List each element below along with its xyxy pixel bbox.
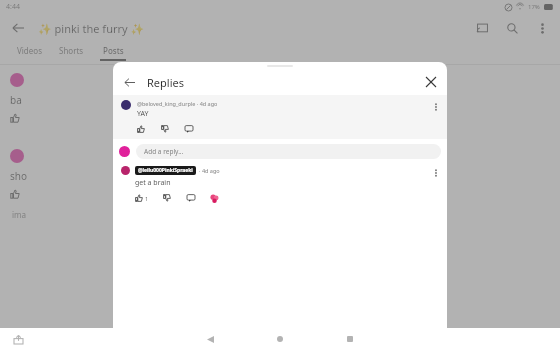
button[interactable]: Dislike xyxy=(163,194,171,202)
staticText: ba xyxy=(10,93,22,107)
button[interactable]: Add a reply... xyxy=(136,144,441,159)
button[interactable]: Cast xyxy=(472,18,492,38)
button[interactable]: Back xyxy=(202,331,218,347)
staticText: @beloved_king_durple · 4d ago xyxy=(137,100,218,107)
staticText: YAY xyxy=(137,109,149,119)
staticText: 4:44 xyxy=(6,2,20,12)
button[interactable]: Back xyxy=(119,72,139,92)
staticText: Replies xyxy=(147,75,184,90)
button[interactable]: More options xyxy=(532,18,552,38)
button[interactable]: Close xyxy=(421,72,441,92)
button[interactable]: Shorts xyxy=(50,42,92,64)
staticText: get a brain xyxy=(135,178,171,188)
staticText: ✨ pinki the furry ✨ xyxy=(38,21,145,36)
button[interactable]: Reply xyxy=(187,194,195,202)
staticText: ima xyxy=(12,209,27,220)
button[interactable]: Posts xyxy=(92,42,134,64)
button[interactable]: More options xyxy=(429,100,443,114)
button[interactable]: Dislike xyxy=(161,125,169,133)
staticText: sho xyxy=(10,169,28,183)
button[interactable]: Share xyxy=(10,331,26,347)
staticText: · 4d ago xyxy=(199,167,220,174)
button[interactable]: Back xyxy=(8,18,28,38)
button[interactable]: More options xyxy=(429,166,443,180)
button[interactable]: Videos xyxy=(8,42,50,64)
button[interactable]: Like xyxy=(135,193,149,203)
staticText: @leilu000PinkiSpraeki xyxy=(138,167,193,174)
staticText: 1 xyxy=(145,195,149,202)
button[interactable]: Like xyxy=(137,124,145,134)
button[interactable]: Search xyxy=(502,18,522,38)
button[interactable]: Reaction xyxy=(210,194,219,203)
staticText: Shorts xyxy=(59,45,84,56)
button[interactable]: Recents xyxy=(342,331,358,347)
staticText: 17% xyxy=(528,3,540,11)
staticText: Add a reply... xyxy=(144,147,184,156)
staticText: Posts xyxy=(103,45,124,56)
button[interactable]: Home xyxy=(272,331,288,347)
staticText: Videos xyxy=(17,45,42,56)
button[interactable]: Reply xyxy=(185,125,193,133)
